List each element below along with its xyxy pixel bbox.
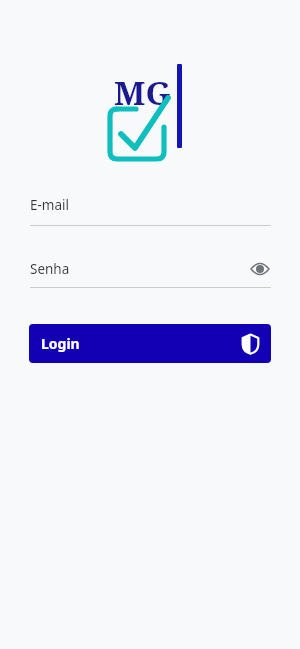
staticText: Login — [41, 334, 80, 353]
staticText: MG — [114, 70, 171, 115]
button[interactable]: Mostrar senha — [249, 258, 271, 280]
button[interactable]: Login — [29, 324, 271, 363]
staticText: Senha — [30, 260, 70, 278]
staticText: E-mail — [30, 196, 70, 214]
